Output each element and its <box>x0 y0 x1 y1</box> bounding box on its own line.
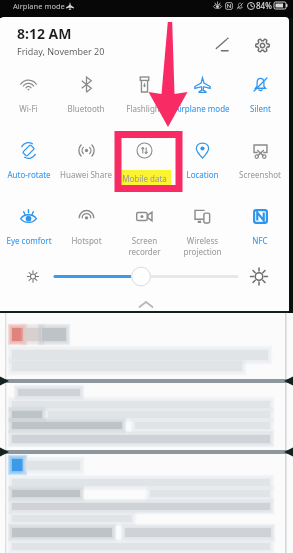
button[interactable]: Eye comfort <box>0 193 57 259</box>
staticText: Mobile data <box>122 173 167 184</box>
button[interactable]: Mobile data <box>115 127 173 193</box>
button[interactable]: Settings <box>249 32 275 58</box>
staticText: Location <box>186 169 219 180</box>
button[interactable]: Airplane mode <box>173 61 231 127</box>
staticText: Screenshot <box>239 169 281 180</box>
staticText: 84% <box>256 0 272 11</box>
button[interactable]: Flashlight <box>115 61 173 127</box>
staticText: Silent <box>250 103 271 114</box>
staticText: NFC <box>252 235 268 246</box>
button[interactable]: Bluetooth <box>57 61 115 127</box>
button[interactable]: NFC <box>231 193 289 259</box>
staticText: Airplane mode <box>13 1 65 11</box>
staticText: Airplane mode <box>174 103 230 114</box>
button[interactable]: Screenshot <box>231 127 289 193</box>
button[interactable]: Silent <box>231 61 289 127</box>
staticText: Huawei Share <box>60 169 112 180</box>
button[interactable]: Wireless projection <box>173 193 231 259</box>
button[interactable]: Hotspot <box>57 193 115 259</box>
staticText: Bluetooth <box>67 103 105 114</box>
staticText: Eye comfort <box>6 235 52 246</box>
staticText: Wireless projection <box>183 235 222 257</box>
button[interactable]: Screen recorder <box>115 193 173 259</box>
button[interactable]: Wi-Fi <box>0 61 57 127</box>
button[interactable]: Edit <box>210 32 236 58</box>
button[interactable]: Location <box>173 127 231 193</box>
button[interactable]: Auto-rotate <box>0 127 57 193</box>
staticText: 8:12 AM <box>17 24 72 43</box>
staticText: Wi-Fi <box>19 103 38 114</box>
staticText: Auto-rotate <box>7 169 51 180</box>
staticText: Flashlight <box>126 103 163 114</box>
button[interactable]: Huawei Share <box>57 127 115 193</box>
staticText: Friday, November 20 <box>17 45 105 57</box>
staticText: Screen recorder <box>128 235 161 257</box>
staticText: Hotspot <box>71 235 102 246</box>
